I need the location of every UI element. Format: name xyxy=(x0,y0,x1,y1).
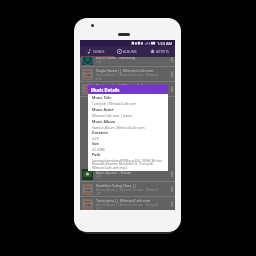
button[interactable]: More options xyxy=(169,167,174,181)
button[interactable]: More options xyxy=(169,67,174,81)
staticText: 4:56 xyxy=(96,77,102,81)
staticText: Tumi jodi |80musicCafe.com xyxy=(92,101,137,105)
staticText: ARTISTS xyxy=(156,49,169,54)
staticText: /storage/emulated/0/Music/(HJ_OVfNC8h/nu… xyxy=(92,158,165,170)
staticText: Ayen Ayelon - Hasan xyxy=(96,170,132,175)
staticText: Various Album |80musicCafe.com xyxy=(92,125,145,129)
staticText: Tariq tariq || 80musicCafe.com xyxy=(96,198,151,203)
button[interactable]: More options xyxy=(169,197,174,210)
button[interactable]: Ayen Ayelon - Hasan xyxy=(80,167,175,181)
staticText: Bhalobasha || 80musicCafe.com xyxy=(96,83,153,88)
staticText: SONGS xyxy=(93,49,105,54)
staticText: Path xyxy=(92,152,101,157)
staticText: Music Artist xyxy=(92,107,114,112)
staticText: Dagla Nawa || 80musicCafe.com xyxy=(96,68,154,73)
staticText: ALBUMS xyxy=(123,49,137,54)
staticText: Music Details xyxy=(91,87,120,93)
button[interactable]: Tariq tariq || 80musicCafe.com xyxy=(80,197,175,210)
button[interactable]: More options xyxy=(169,182,174,196)
staticText: Black Hawk - Samsung xyxy=(96,57,136,60)
button[interactable]: Black Hawk - Samsung xyxy=(80,57,175,66)
staticText: Duration xyxy=(92,130,108,135)
staticText: Music Title xyxy=(92,95,112,100)
staticText: Various Album || 80musicCafe.com 80music… xyxy=(96,88,159,92)
staticText: 4.14 MB xyxy=(92,147,105,151)
staticText: 5:02 xyxy=(96,92,102,96)
staticText: 4:11 xyxy=(96,207,102,210)
button[interactable]: More options xyxy=(169,82,174,96)
button[interactable]: Bhalobasha || 80musicCafe.com xyxy=(80,82,175,96)
staticText: 4:29 xyxy=(92,136,99,140)
staticText: Various Album || 80musicCafe.com 80music… xyxy=(96,203,159,207)
button[interactable]: ALBUMS xyxy=(111,46,143,57)
staticText: 4:01 xyxy=(96,192,102,196)
staticText: Sushilter Subuj Oma || xyxy=(96,183,137,188)
button[interactable]: SONGS xyxy=(80,46,111,57)
staticText: Various Album || 80musicCafe.com 80music… xyxy=(96,73,159,77)
staticText: Music Album xyxy=(92,119,116,124)
button[interactable]: More options xyxy=(169,57,174,66)
staticText: 80musicCafe.com | James xyxy=(92,113,133,117)
button[interactable]: Sushilter Subuj Oma || xyxy=(80,182,175,196)
staticText: 1:33 AM xyxy=(157,41,173,46)
staticText: Various Album || 80musicCafe.com 80music… xyxy=(96,188,159,192)
button[interactable]: Dagla Nawa || 80musicCafe.com xyxy=(80,67,175,81)
staticText: 3:59 xyxy=(96,175,102,179)
staticText: Size xyxy=(92,141,99,146)
staticText: 4:44 xyxy=(96,60,102,64)
button[interactable]: ARTISTS xyxy=(143,46,175,57)
